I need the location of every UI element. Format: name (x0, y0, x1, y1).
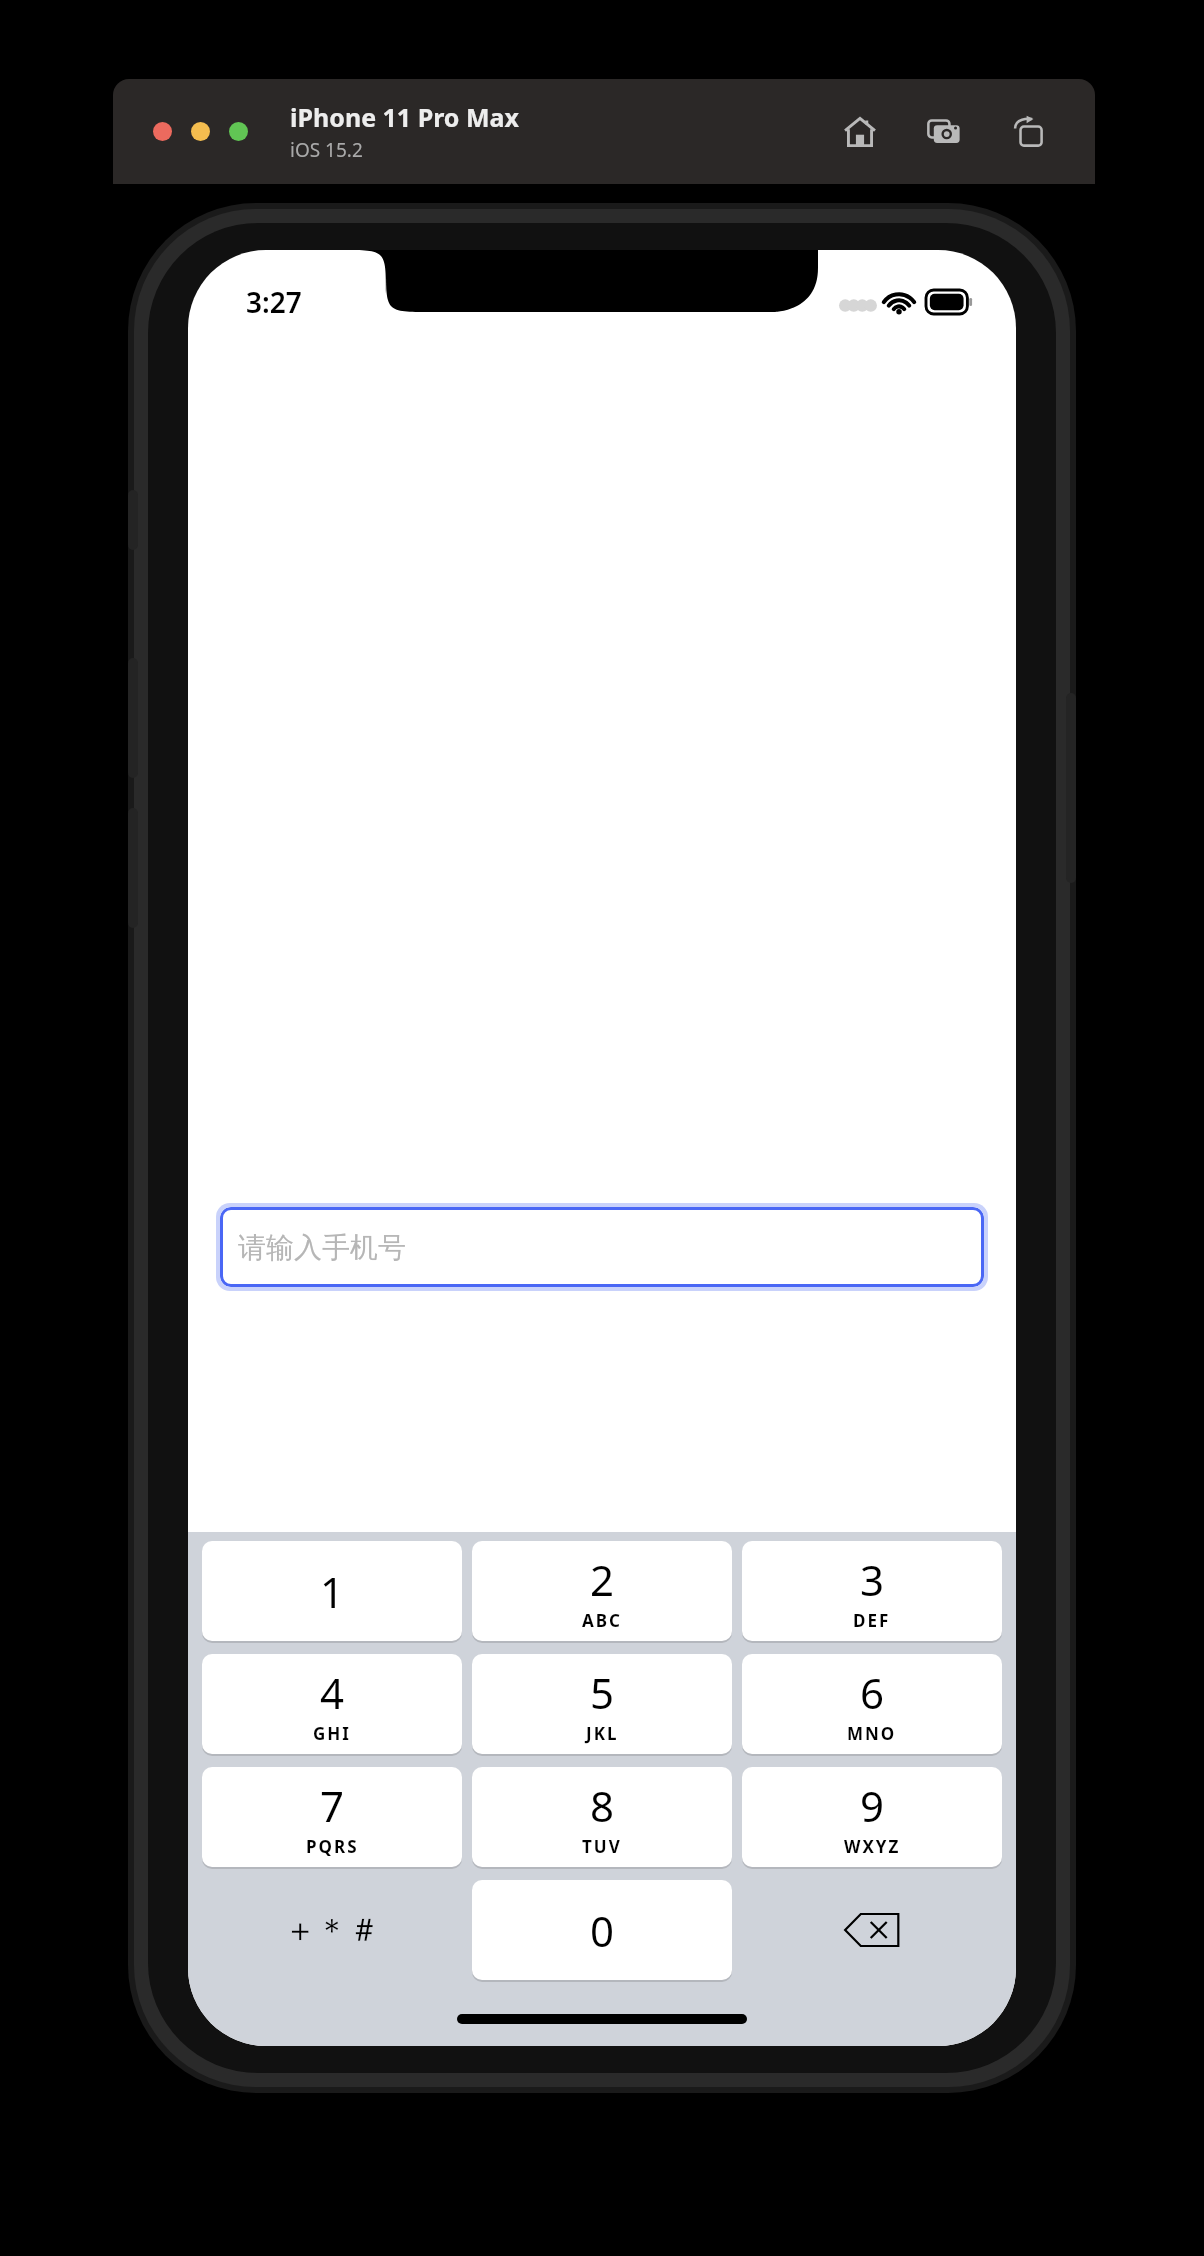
staticText: MNO (847, 1722, 897, 1745)
button[interactable]: Screenshot (922, 110, 966, 154)
staticText: 请输入手机号 (238, 1230, 406, 1265)
staticText: 9 (860, 1777, 885, 1834)
staticText: 0 (590, 1902, 615, 1959)
staticText: GHI (313, 1722, 351, 1745)
staticText: ABC (582, 1609, 622, 1632)
button[interactable]: Share (1006, 110, 1050, 154)
staticText: 3:27 (246, 283, 302, 321)
staticText: 7 (320, 1777, 345, 1834)
staticText: ＋＊＃ (284, 1910, 380, 1950)
button[interactable]: Home (838, 110, 882, 154)
button[interactable]: 1 (202, 1541, 462, 1641)
staticText: 5 (590, 1664, 615, 1721)
button[interactable]: 8 (472, 1767, 732, 1867)
staticText: JKL (586, 1722, 619, 1745)
staticText: 4 (320, 1664, 345, 1721)
staticText: iOS 15.2 (290, 137, 363, 163)
staticText: 8 (590, 1777, 615, 1834)
staticText: DEF (853, 1609, 891, 1632)
button[interactable]: 2 (472, 1541, 732, 1641)
button[interactable]: 7 (202, 1767, 462, 1867)
button[interactable]: 6 (742, 1654, 1002, 1754)
staticText: TUV (582, 1835, 622, 1858)
staticText: 3 (860, 1551, 885, 1608)
staticText: 6 (860, 1664, 885, 1721)
button[interactable]: Plus star hash (202, 1880, 462, 1980)
button[interactable]: 0 (472, 1880, 732, 1980)
staticText: iPhone 11 Pro Max (290, 100, 519, 134)
staticText: 1 (320, 1563, 345, 1620)
button[interactable]: 9 (742, 1767, 1002, 1867)
button[interactable]: Backspace (742, 1880, 1002, 1980)
button[interactable]: 3 (742, 1541, 1002, 1641)
staticText: PQRS (306, 1835, 359, 1858)
staticText: WXYZ (844, 1835, 901, 1858)
button[interactable]: 4 (202, 1654, 462, 1754)
staticText: 2 (590, 1551, 615, 1608)
button[interactable]: 请输入手机号 (220, 1207, 984, 1287)
button[interactable]: 5 (472, 1654, 732, 1754)
